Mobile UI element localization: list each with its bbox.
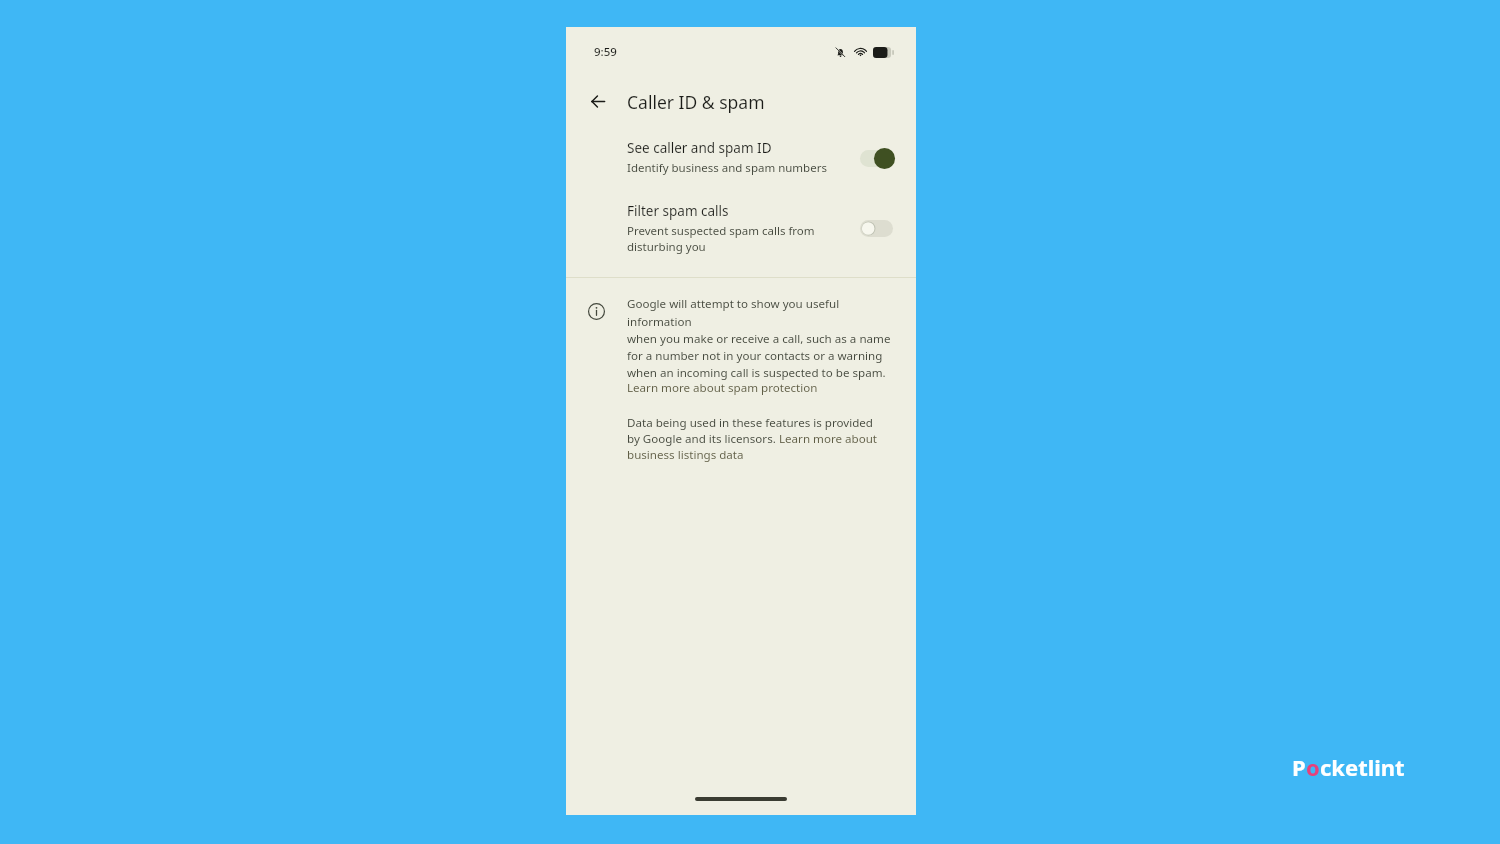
staticText: Filter spam calls: [627, 202, 729, 220]
button[interactable]: business listings data: [627, 447, 744, 463]
button[interactable]: Back: [575, 78, 621, 124]
button[interactable]: See caller and spam ID: [566, 135, 916, 180]
staticText: 9:59: [594, 44, 617, 60]
staticText: by Google and its licensors.: [627, 431, 779, 447]
staticText: Data being used in these features is pro…: [627, 415, 873, 431]
staticText: Prevent suspected spam calls from distur…: [627, 223, 815, 254]
staticText: Caller ID & spam: [627, 90, 765, 114]
staticText: o: [1306, 752, 1320, 782]
button[interactable]: Off: [852, 211, 900, 245]
staticText: Identify business and spam numbers: [627, 160, 827, 176]
staticText: See caller and spam ID: [627, 139, 772, 157]
staticText: Google will attempt to show you useful i…: [627, 296, 904, 380]
button[interactable]: Filter spam calls: [566, 198, 916, 258]
button[interactable]: Learn more about spam protection: [627, 380, 818, 396]
button[interactable]: On: [852, 141, 900, 175]
button[interactable]: Learn more about: [779, 431, 878, 447]
staticText: P: [1292, 752, 1306, 782]
staticText: cketlint: [1320, 752, 1405, 782]
